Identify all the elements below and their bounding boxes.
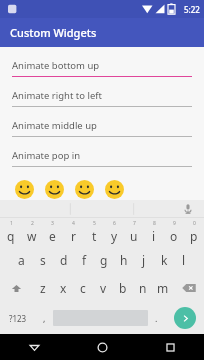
staticText: Custom Widgets (10, 25, 97, 40)
staticText: p (190, 228, 198, 244)
button[interactable]: 2 (21, 218, 42, 246)
button[interactable]: . (148, 302, 165, 334)
button[interactable]: 4 (63, 218, 84, 246)
button[interactable]: 1 (0, 218, 21, 246)
button[interactable]: Enter (174, 307, 196, 329)
button[interactable]: m (153, 274, 173, 302)
button[interactable]: 8 (144, 218, 164, 246)
button[interactable]: , (36, 302, 53, 334)
staticText: w (27, 228, 37, 244)
staticText: 5 (93, 220, 96, 227)
staticText: 7 (133, 220, 136, 227)
staticText: 3 (51, 220, 54, 227)
staticText: 5:22 (184, 4, 200, 15)
staticText: , (43, 312, 46, 324)
button[interactable]: b (113, 274, 133, 302)
staticText: i (152, 228, 156, 244)
button[interactable]: j (134, 246, 154, 274)
staticText: r (71, 228, 76, 244)
staticText: v (100, 280, 107, 296)
button[interactable]: 0 (184, 218, 204, 246)
button[interactable]: 3 (42, 218, 63, 246)
staticText: t (92, 228, 97, 244)
staticText: g (100, 252, 108, 268)
button[interactable]: d (53, 246, 74, 274)
button[interactable]: 5 (84, 218, 104, 246)
button[interactable]: Animate bottom up (0, 53, 204, 83)
button[interactable]: f (74, 246, 94, 274)
staticText: d (60, 252, 68, 268)
button[interactable]: ?123 (0, 302, 36, 334)
staticText: f (82, 252, 87, 268)
staticText: o (170, 228, 178, 244)
button[interactable]: Smiley (13, 179, 36, 200)
button[interactable]: c (73, 274, 93, 302)
staticText: ?123 (9, 313, 27, 324)
staticText: k (161, 252, 168, 268)
button[interactable]: Smiley (43, 179, 66, 200)
button[interactable]: Backspace (173, 274, 204, 302)
button[interactable]: a (11, 246, 32, 274)
staticText: b (119, 280, 127, 296)
button[interactable]: l (174, 246, 194, 274)
button[interactable]: Smiley (73, 179, 96, 200)
button[interactable]: Shift (0, 274, 32, 302)
button[interactable]: s (32, 246, 53, 274)
button[interactable]: Animate right to left (0, 83, 204, 113)
button[interactable]: Animate middle up (0, 113, 204, 143)
staticText: a (18, 252, 25, 268)
button[interactable]: 9 (164, 218, 184, 246)
button[interactable]: 7 (124, 218, 144, 246)
staticText: 2 (31, 220, 34, 227)
staticText: 4 (72, 220, 75, 227)
button[interactable]: h (114, 246, 134, 274)
staticText: Animate pop in (12, 149, 81, 162)
button[interactable]: v (93, 274, 113, 302)
staticText: n (139, 280, 147, 296)
button[interactable]: 6 (104, 218, 124, 246)
staticText: 6 (113, 220, 116, 227)
staticText: e (49, 228, 56, 244)
staticText: x (60, 280, 67, 296)
staticText: 8 (153, 220, 156, 227)
button[interactable]: x (53, 274, 73, 302)
button[interactable]: g (94, 246, 114, 274)
button[interactable]: z (32, 274, 53, 302)
staticText: y (111, 228, 118, 244)
staticText: m (157, 280, 169, 296)
staticText: h (120, 252, 128, 268)
button[interactable]: Home (68, 334, 136, 360)
button[interactable]: Smiley (103, 179, 126, 200)
button[interactable]: n (133, 274, 153, 302)
staticText: Animate right to left (12, 89, 103, 102)
button[interactable]: Back (0, 334, 68, 360)
staticText: 0 (193, 220, 196, 227)
staticText: q (7, 228, 15, 244)
staticText: l (182, 252, 186, 268)
staticText: u (130, 228, 138, 244)
staticText: j (142, 252, 146, 268)
button[interactable]: k (154, 246, 174, 274)
staticText: c (80, 280, 86, 296)
staticText: Animate middle up (12, 119, 97, 132)
staticText: z (40, 280, 46, 296)
staticText: Animate bottom up (12, 59, 100, 72)
staticText: 1 (10, 220, 13, 227)
staticText: . (155, 312, 158, 324)
button[interactable]: Recents (136, 334, 204, 360)
staticText: s (40, 252, 46, 268)
button[interactable]: Voice input (180, 201, 196, 217)
staticText: 9 (173, 220, 176, 227)
button[interactable]: Animate pop in (0, 143, 204, 173)
